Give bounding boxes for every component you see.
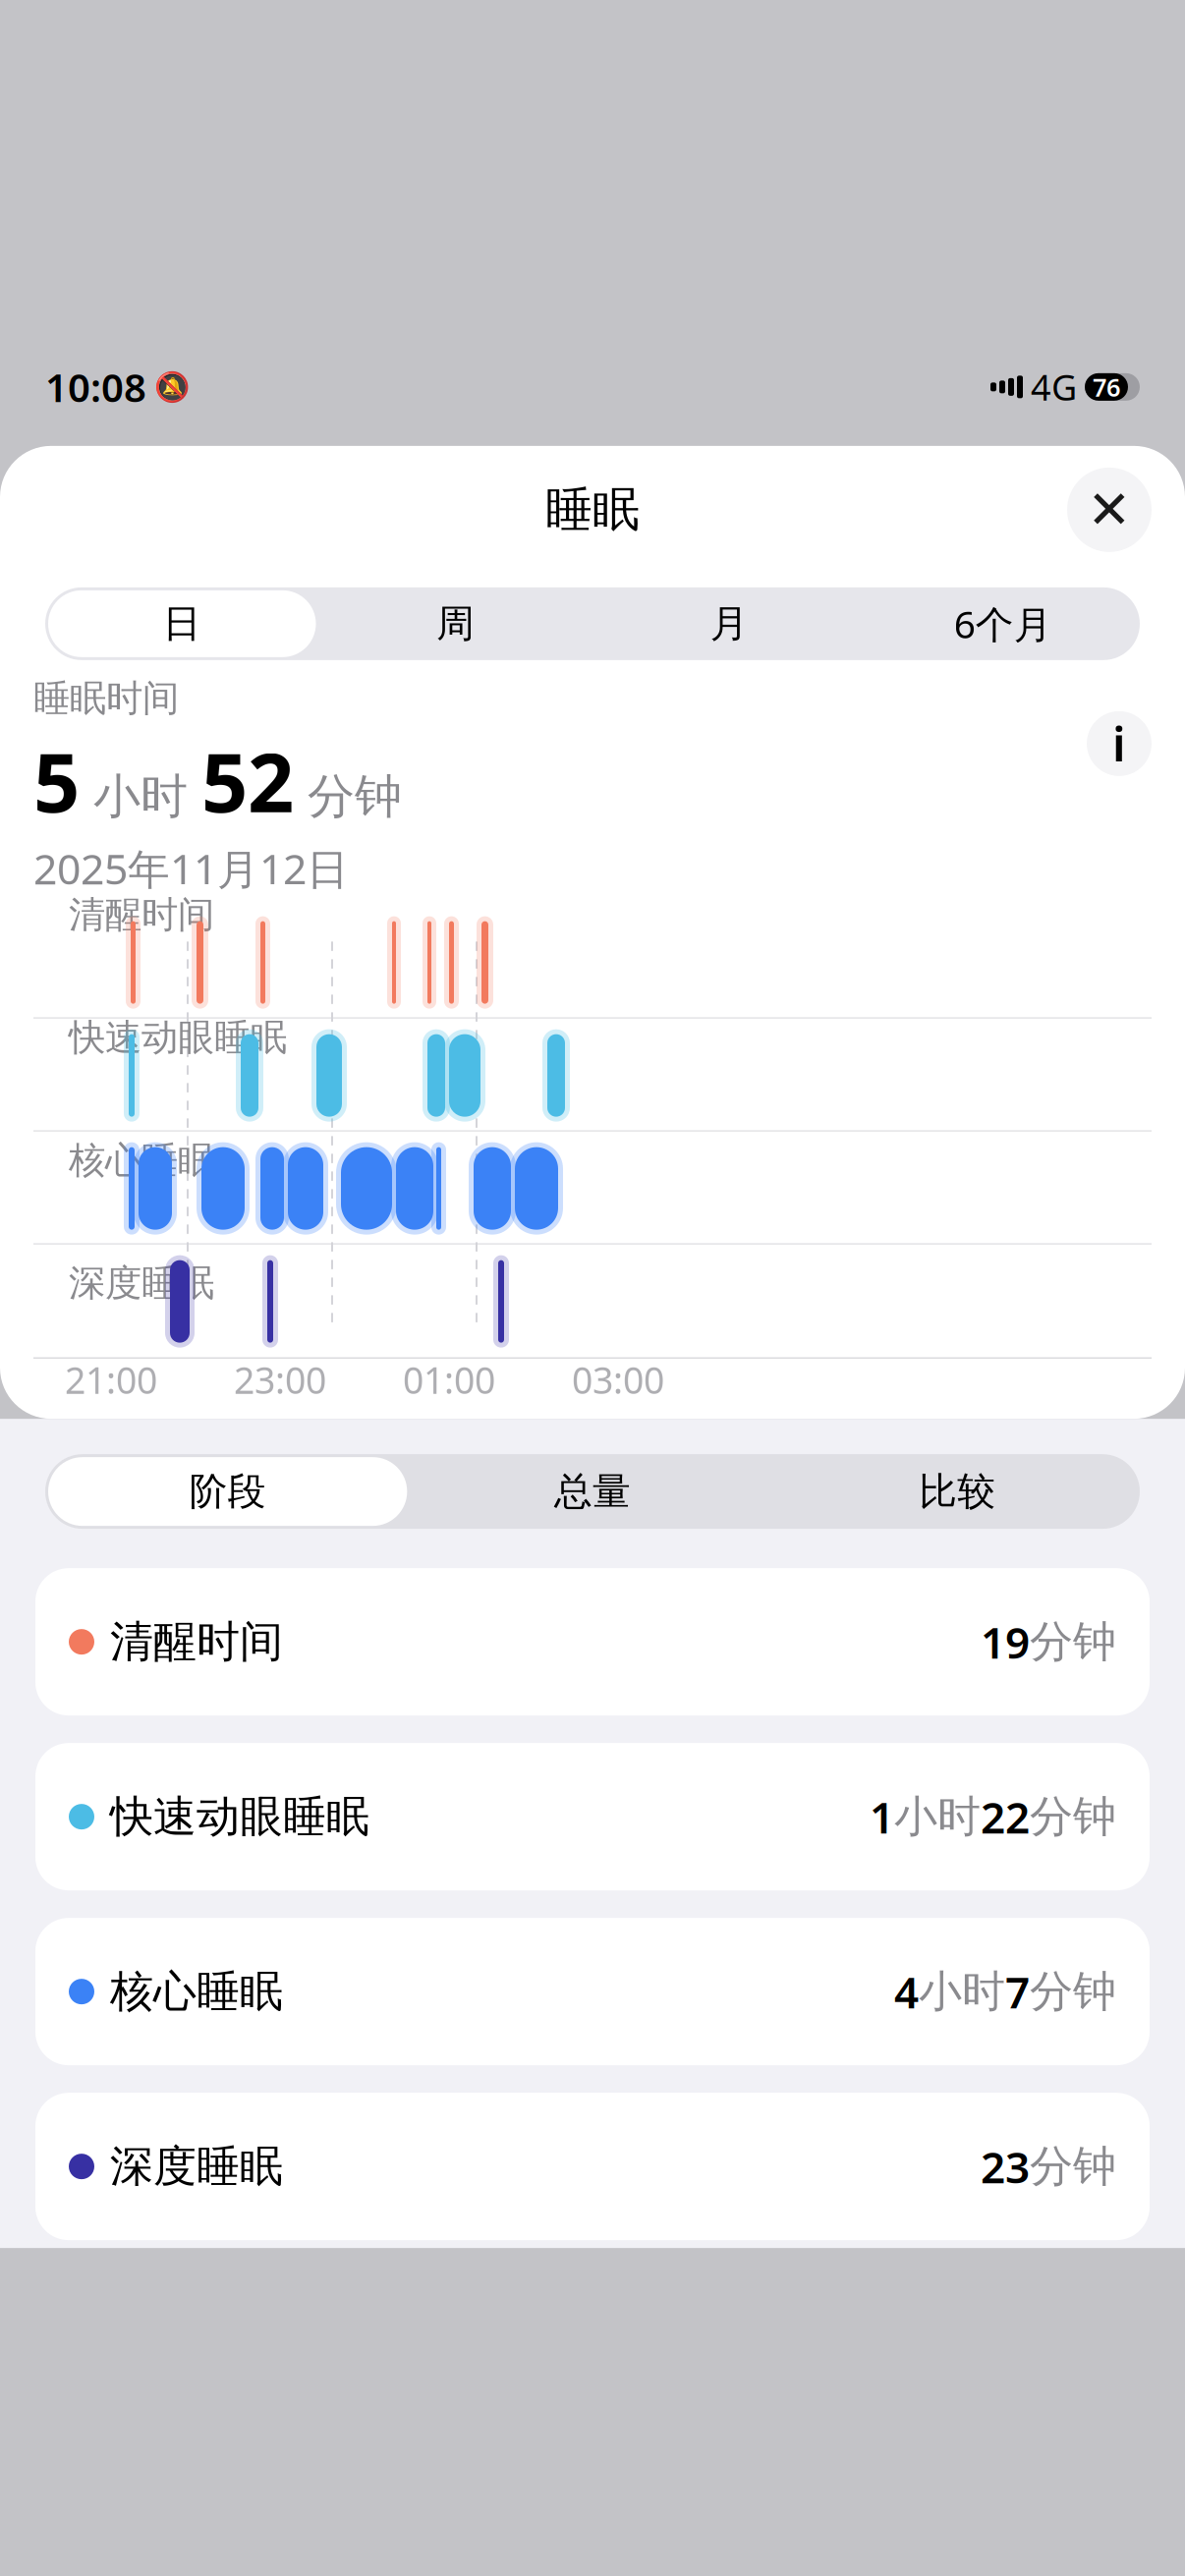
staticText: 03:00 [572, 1355, 664, 1404]
staticText: 核心睡眠 [110, 1965, 283, 2018]
staticText: 月 [710, 600, 749, 647]
staticText: 小时 [919, 1965, 1005, 2018]
staticText: 19 [981, 1613, 1030, 1670]
staticText: 🔕 [154, 370, 191, 403]
button[interactable]: 日 [45, 587, 319, 660]
staticText: 总量 [554, 1468, 631, 1515]
staticText: 分钟 [1030, 1615, 1116, 1668]
button[interactable]: 总量 [410, 1454, 775, 1529]
staticText: 清醒时间 [110, 1615, 283, 1668]
staticText: 7 [1005, 1963, 1030, 2020]
staticText: 分钟 [1030, 1790, 1116, 1843]
staticText: 睡眠 [545, 481, 640, 539]
button[interactable]: 月 [592, 587, 866, 660]
button[interactable]: 周 [319, 587, 592, 660]
staticText: 小时 [80, 767, 201, 825]
staticText: 10:08 [45, 361, 146, 413]
button[interactable]: 关闭 [1067, 468, 1152, 552]
staticText: 小时 [894, 1790, 981, 1843]
staticText: 23 [981, 2138, 1030, 2195]
staticText: 76 [1093, 370, 1120, 403]
button[interactable]: 深度睡眠 [35, 2093, 1150, 2240]
staticText: 深度睡眠 [69, 1261, 214, 1306]
staticText: 4G [1031, 363, 1077, 410]
staticText: 分钟 [294, 767, 402, 825]
staticText: 5 [33, 727, 80, 835]
staticText: 快速动眼睡眠 [69, 1015, 287, 1060]
button[interactable]: 关于睡眠时间 [1087, 711, 1152, 776]
staticText: 周 [436, 600, 475, 647]
staticText: 21:00 [65, 1355, 157, 1404]
staticText: 快速动眼睡眠 [110, 1790, 369, 1843]
staticText: 睡眠时间 [33, 676, 179, 721]
staticText: 4 [894, 1963, 919, 2020]
staticText: 6个月 [954, 599, 1052, 649]
button[interactable]: 阶段 [45, 1454, 410, 1529]
staticText: 分钟 [1030, 1965, 1116, 2018]
staticText: 比较 [919, 1468, 996, 1515]
staticText: 深度睡眠 [110, 2140, 283, 2193]
staticText: 清醒时间 [69, 892, 214, 937]
staticText: 01:00 [403, 1355, 495, 1404]
staticText: i [1112, 712, 1126, 775]
button[interactable]: 核心睡眠 [35, 1918, 1150, 2065]
staticText: 23:00 [234, 1355, 326, 1404]
staticText: 1 [870, 1788, 894, 1845]
staticText: ✕ [1087, 480, 1131, 539]
staticText: 日 [163, 600, 201, 647]
staticText: 阶段 [189, 1468, 266, 1515]
staticText: 分钟 [1030, 2140, 1116, 2193]
staticText: 52 [201, 727, 294, 835]
button[interactable]: 清醒时间 [35, 1568, 1150, 1715]
button[interactable]: 比较 [775, 1454, 1140, 1529]
staticText: 22 [981, 1788, 1030, 1845]
staticText: 核心睡眠 [69, 1138, 214, 1183]
button[interactable]: 快速动眼睡眠 [35, 1743, 1150, 1890]
staticText: 2025年11月12日 [33, 840, 349, 896]
button[interactable]: 6个月 [866, 587, 1140, 660]
